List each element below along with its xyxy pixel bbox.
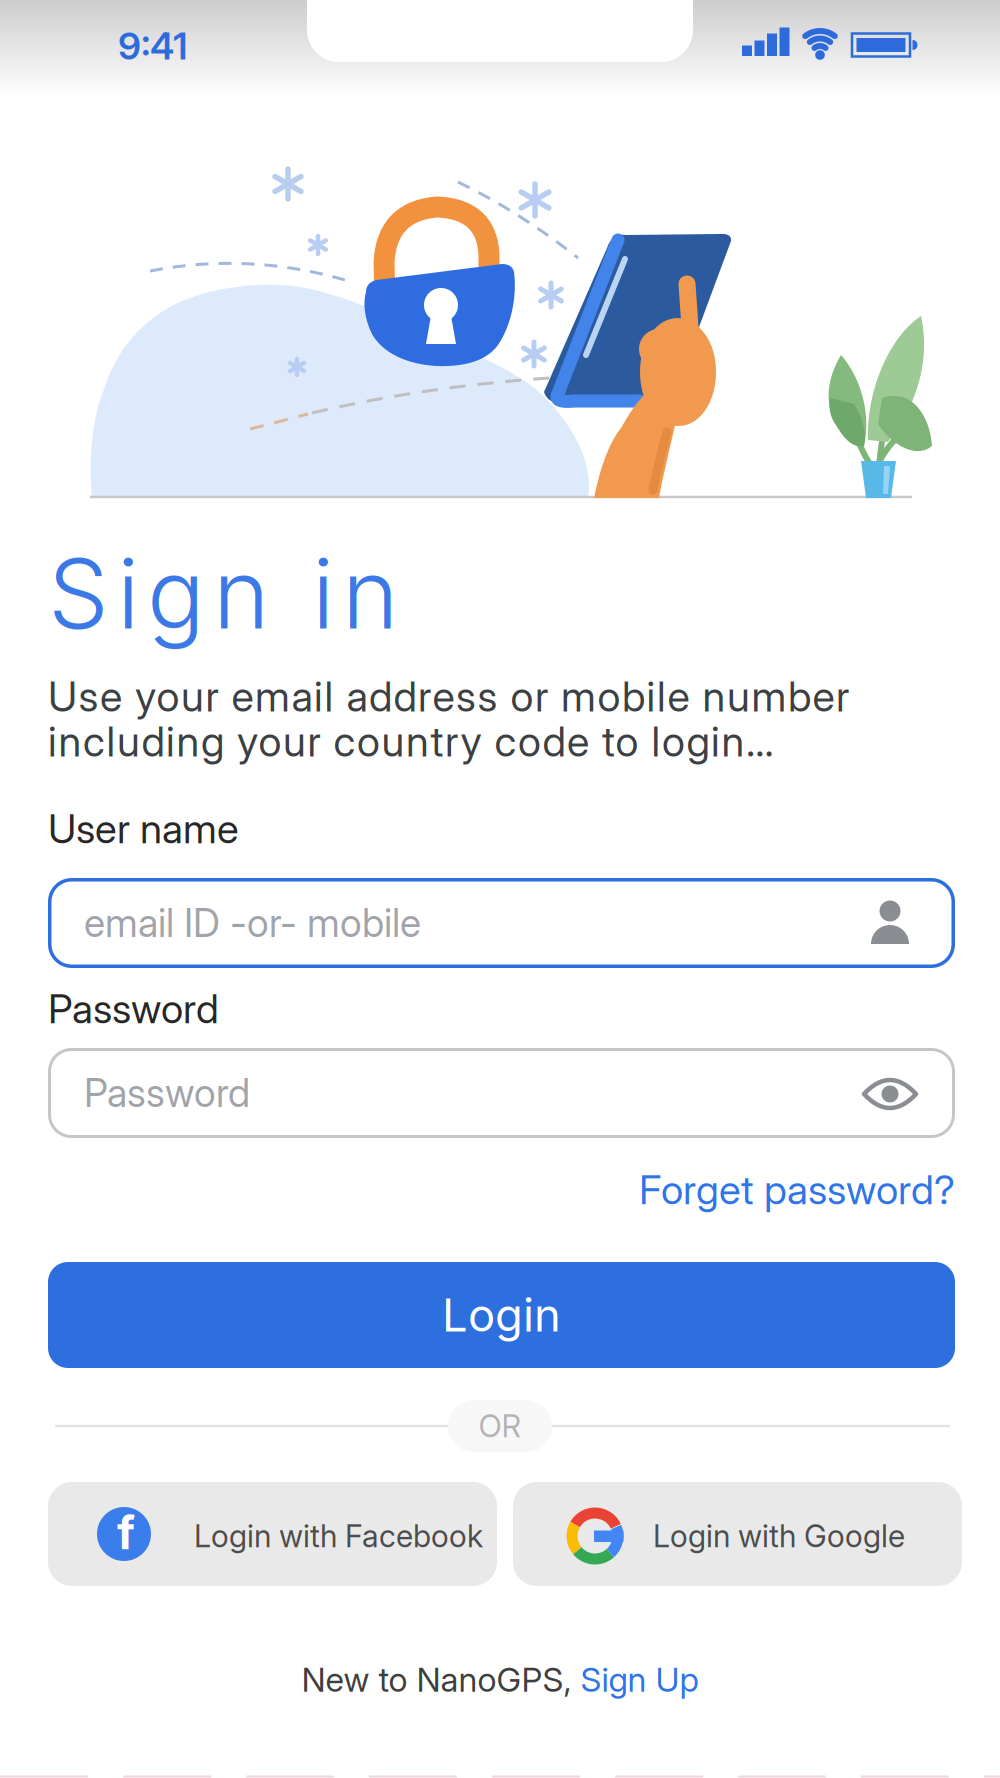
button[interactable]: Login with Google xyxy=(513,1482,962,1586)
staticText: Login xyxy=(442,1288,561,1342)
staticText: 9:41 xyxy=(118,24,188,68)
staticText: Password xyxy=(48,985,219,1032)
staticText: email ID -or- mobile xyxy=(84,900,421,946)
staticText: including your country code to login… xyxy=(48,717,774,766)
staticText: New to NanoGPS, xyxy=(301,1660,580,1699)
staticText: Sign in xyxy=(48,537,398,650)
staticText: Sign Up xyxy=(580,1660,698,1699)
staticText: Login with Facebook xyxy=(194,1518,483,1554)
button[interactable]: Forget password? xyxy=(639,1166,955,1213)
button[interactable]: User name xyxy=(48,878,955,968)
staticText: OR xyxy=(478,1408,521,1444)
staticText: Forget password? xyxy=(639,1166,955,1213)
staticText: User name xyxy=(48,805,239,852)
button[interactable]: Sign Up xyxy=(580,1660,698,1699)
staticText: Use your email address or mobile number xyxy=(48,672,849,721)
staticText: f xyxy=(117,1506,135,1559)
staticText: Password xyxy=(84,1070,250,1116)
button[interactable]: Password xyxy=(48,1048,955,1138)
staticText: Login with Google xyxy=(653,1518,905,1554)
button[interactable]: f xyxy=(48,1482,497,1586)
button[interactable]: Login xyxy=(48,1262,955,1368)
